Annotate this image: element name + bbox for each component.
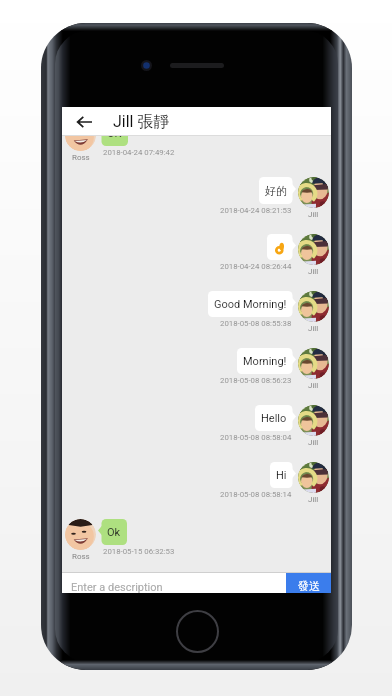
button[interactable] [267,234,296,260]
staticText: Jill [308,267,319,276]
button[interactable]: Hello [255,405,296,431]
staticText: Jill 張靜 [113,112,170,132]
button[interactable]: Morning! [237,348,296,374]
staticText: Jill [308,324,319,333]
staticText: Ross [72,153,90,162]
button[interactable]: Hi [270,462,296,488]
staticText: Ross [72,552,90,561]
staticText: 2018-05-08 08:58:04 [220,433,292,442]
staticText: 好的 [265,184,287,198]
button[interactable]: 發送 [286,573,331,593]
button[interactable]: Ok [98,519,127,545]
button[interactable]: Enter a description [62,573,286,593]
staticText: Jill [308,381,319,390]
staticText: 2018-05-08 08:58:14 [220,490,292,499]
staticText: 2018-05-08 08:55:38 [220,319,292,328]
staticText: 2018-05-15 06:32:53 [103,547,175,556]
staticText: Jill [308,210,319,219]
staticText: Hi [276,469,287,482]
staticText: OK [107,136,122,140]
staticText: Enter a description [71,581,163,593]
staticText: 發送 [298,579,320,593]
staticText: Morning! [243,355,287,368]
staticText: 2018-05-08 08:56:23 [220,376,292,385]
staticText: 2018-04-24 08:26:44 [220,262,292,271]
button[interactable]: Back [69,107,99,136]
staticText: 2018-04-24 07:49:42 [103,148,175,157]
staticText: 2018-04-24 08:21:53 [220,206,292,215]
staticText: Good Morning! [214,298,287,311]
staticText: Ok [107,526,121,539]
button[interactable]: 好的 [259,177,296,204]
button[interactable]: Good Morning! [208,291,296,317]
staticText: Hello [261,412,287,425]
staticText: Jill [308,495,319,504]
button[interactable]: OK [98,136,128,146]
staticText: Jill [308,438,319,447]
